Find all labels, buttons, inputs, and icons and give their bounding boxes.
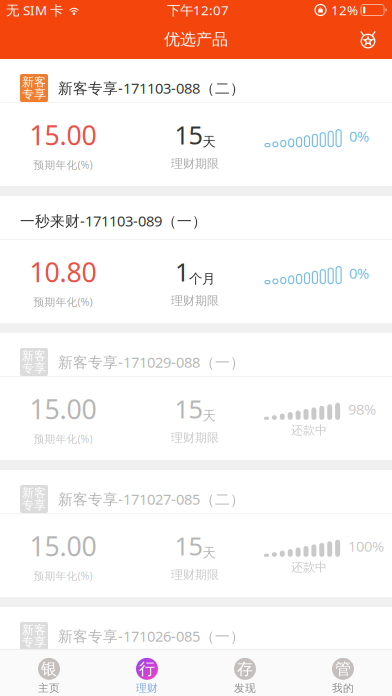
staticText: 预期年化(%) xyxy=(33,295,92,309)
staticText: 专享 xyxy=(22,87,46,101)
button[interactable]: 行 xyxy=(98,650,196,696)
staticText: 预期年化(%) xyxy=(33,432,92,446)
staticText: 15.00 xyxy=(29,117,96,153)
staticText: 我的 xyxy=(332,682,354,695)
staticText: 天 xyxy=(202,134,215,150)
staticText: 新客专享-171029-088（一） xyxy=(58,352,245,372)
staticText: 理财期限 xyxy=(171,430,219,445)
staticText: 下午12:07 xyxy=(167,1,229,19)
staticText: 理财期限 xyxy=(171,293,219,308)
staticText: 15.00 xyxy=(29,391,96,427)
button[interactable]: 新客 xyxy=(0,470,392,597)
staticText: 1 xyxy=(175,255,189,288)
button[interactable]: 新客 xyxy=(0,607,392,696)
staticText: 理财期限 xyxy=(171,156,219,171)
button[interactable]: 存 xyxy=(196,650,294,696)
staticText: 98% xyxy=(348,399,376,419)
staticText: 无 SIM 卡 xyxy=(6,1,63,19)
staticText: 个月 xyxy=(189,271,215,287)
staticText: 0% xyxy=(349,263,369,283)
staticText: 0% xyxy=(349,126,369,146)
staticText: 存 xyxy=(237,659,253,679)
staticText: 专享 xyxy=(22,361,46,375)
staticText: 新客专享-171026-085（一） xyxy=(58,626,245,646)
button[interactable]: 管 xyxy=(294,650,392,696)
staticText: 15 xyxy=(174,118,202,151)
button[interactable]: 新客 xyxy=(0,333,392,460)
staticText: 新客 xyxy=(22,486,46,500)
button[interactable]: 新客 xyxy=(0,59,392,186)
staticText: 发现 xyxy=(234,682,256,695)
staticText: 主页 xyxy=(38,682,60,695)
staticText: 12% xyxy=(331,1,358,19)
staticText: 专享 xyxy=(22,635,46,649)
staticText: 专享 xyxy=(22,498,46,512)
staticText: 一秒来财-171103-089（一） xyxy=(20,211,207,230)
staticText: 15.00 xyxy=(29,528,96,564)
button[interactable]: 银 xyxy=(0,650,98,696)
button[interactable]: 客服 xyxy=(350,20,386,59)
staticText: 银 xyxy=(41,659,57,679)
staticText: 100% xyxy=(348,673,384,693)
staticText: 预期年化(%) xyxy=(33,158,92,172)
staticText: 15 xyxy=(174,529,202,562)
staticText: 理财期限 xyxy=(171,567,219,582)
staticText: 理财 xyxy=(136,682,158,695)
staticText: 管 xyxy=(335,659,351,679)
staticText: 优选产品 xyxy=(164,30,228,49)
staticText: 新客 xyxy=(22,623,46,637)
staticText: 预期年化(%) xyxy=(33,569,92,583)
staticText: 100% xyxy=(348,536,384,556)
staticText: 还款中 xyxy=(291,560,327,575)
staticText: 还款中 xyxy=(291,423,327,438)
staticText: 天 xyxy=(202,545,215,561)
staticText: 新客 xyxy=(22,75,46,89)
staticText: 新客专享-171103-088（二） xyxy=(58,78,245,98)
button[interactable]: 一秒来财-171103-089（一） xyxy=(0,196,392,323)
staticText: 新客 xyxy=(22,349,46,363)
staticText: 行 xyxy=(139,659,155,679)
staticText: 15.00 xyxy=(29,665,96,696)
staticText: 天 xyxy=(202,408,215,424)
staticText: 10.80 xyxy=(29,254,96,290)
staticText: 新客专享-171027-085（二） xyxy=(58,489,245,509)
staticText: 15 xyxy=(174,392,202,425)
